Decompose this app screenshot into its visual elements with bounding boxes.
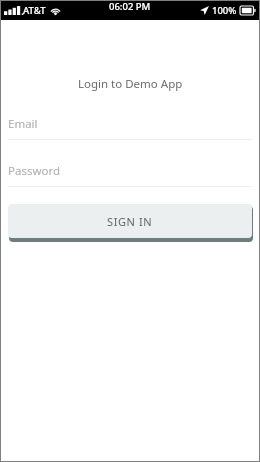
staticText: 100% (212, 4, 237, 17)
button[interactable]: Sign in (8, 204, 252, 238)
staticText: Password (8, 163, 61, 179)
button[interactable]: Email (8, 113, 252, 140)
staticText: Login to Demo App (78, 76, 183, 92)
staticText: Email (8, 116, 38, 132)
staticText: 06:02 PM (109, 0, 151, 13)
staticText: AT&T (23, 4, 46, 17)
button[interactable]: Password (8, 160, 252, 187)
staticText: SIGN IN (107, 214, 153, 229)
